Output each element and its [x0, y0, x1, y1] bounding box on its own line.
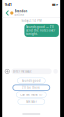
button[interactable]: Talk later: [18, 99, 45, 104]
staticText: Can we move it?: [20, 93, 42, 96]
staticText: ▰: [56, 3, 58, 6]
button[interactable]: Send: [53, 69, 58, 74]
button[interactable]: Sounds good: [17, 78, 45, 83]
button[interactable]: Can we move it?: [16, 92, 46, 97]
button[interactable]: Add attachment: [5, 69, 10, 74]
staticText: ▮▮▮: [52, 3, 55, 6]
staticText: online: [15, 13, 25, 17]
button[interactable]: Brandon: [10, 9, 28, 17]
staticText: Talk later: [26, 100, 37, 103]
staticText: Sounds good — I'll send the notes over t…: [26, 25, 55, 36]
staticText: Today 2:14 PM: [21, 19, 41, 22]
staticText: Brandon: [15, 9, 28, 13]
button[interactable]: Back: [5, 9, 10, 17]
staticText: 9:41: [5, 2, 12, 7]
button[interactable]: I'll be there: [13, 85, 50, 90]
staticText: Enter message: [13, 70, 32, 73]
staticText: Sounds good: [22, 79, 41, 82]
staticText: I'll be there: [22, 86, 40, 89]
